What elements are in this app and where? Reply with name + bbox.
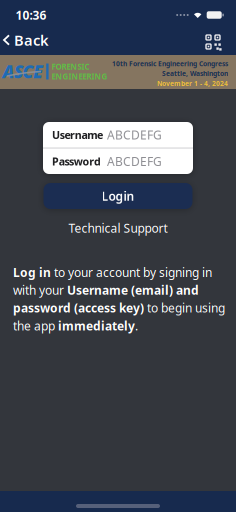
staticText: ASCE	[2, 60, 43, 83]
button[interactable]	[205, 34, 221, 50]
button[interactable]: Login	[43, 183, 192, 209]
button[interactable]: Back	[3, 30, 49, 50]
staticText: Username	[52, 128, 103, 142]
button[interactable]: Password	[43, 148, 193, 174]
staticText: Password	[52, 154, 101, 168]
button[interactable]: Username	[43, 122, 193, 147]
staticText: FORENSIC	[52, 61, 90, 72]
staticText: ABCDEFG	[107, 127, 162, 143]
staticText: Log in to your account by signing in	[13, 264, 212, 280]
staticText: Technical Support	[68, 220, 167, 236]
staticText: password (access key) to begin using	[13, 300, 225, 316]
staticText: with your Username (email) and	[13, 282, 199, 298]
staticText: Login	[101, 188, 134, 204]
staticText: ABCDEFG	[107, 153, 162, 169]
staticText: Seattle, Washington	[162, 69, 228, 78]
staticText: 10:36	[15, 7, 46, 23]
button[interactable]: Technical Support	[68, 220, 167, 236]
staticText: 10th Forensic Engineering Congress	[112, 59, 228, 68]
staticText: the app immediately.	[13, 318, 138, 334]
staticText: Back	[14, 30, 49, 50]
staticText: November 1 - 4, 2024	[157, 79, 228, 88]
staticText: ENGINEERING	[52, 71, 108, 82]
